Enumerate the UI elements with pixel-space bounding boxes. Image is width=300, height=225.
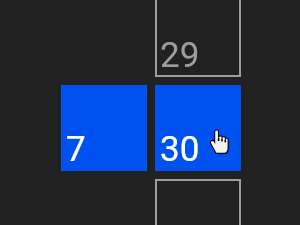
button[interactable]: Empty cell [155, 179, 241, 225]
staticText: 29 [160, 35, 200, 76]
staticText: 7 [66, 129, 86, 170]
button[interactable]: Cell 7 [61, 85, 147, 171]
staticText: 30 [160, 129, 200, 170]
button[interactable]: Cell 29 [155, 0, 241, 77]
button[interactable]: Cell 30 [155, 85, 241, 171]
